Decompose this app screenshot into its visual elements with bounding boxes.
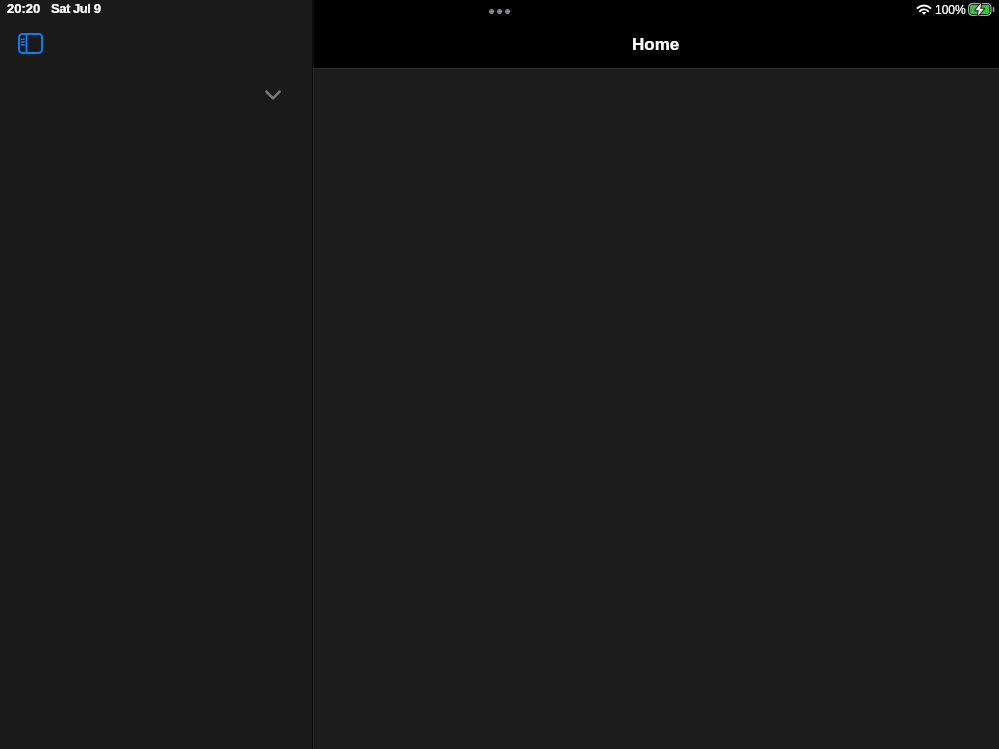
button[interactable]: Wi-Fi and battery status (917, 3, 994, 16)
button[interactable]: Expand section (259, 82, 287, 108)
staticText: Sat Jul 9 (51, 1, 101, 16)
staticText: 20:20 (7, 1, 41, 16)
staticText: 100% (935, 3, 966, 16)
button[interactable]: 20:20 (7, 1, 101, 16)
button[interactable]: Multitasking controls (489, 9, 510, 14)
button[interactable]: Toggle sidebar (13, 29, 47, 58)
staticText: Home (632, 35, 680, 54)
